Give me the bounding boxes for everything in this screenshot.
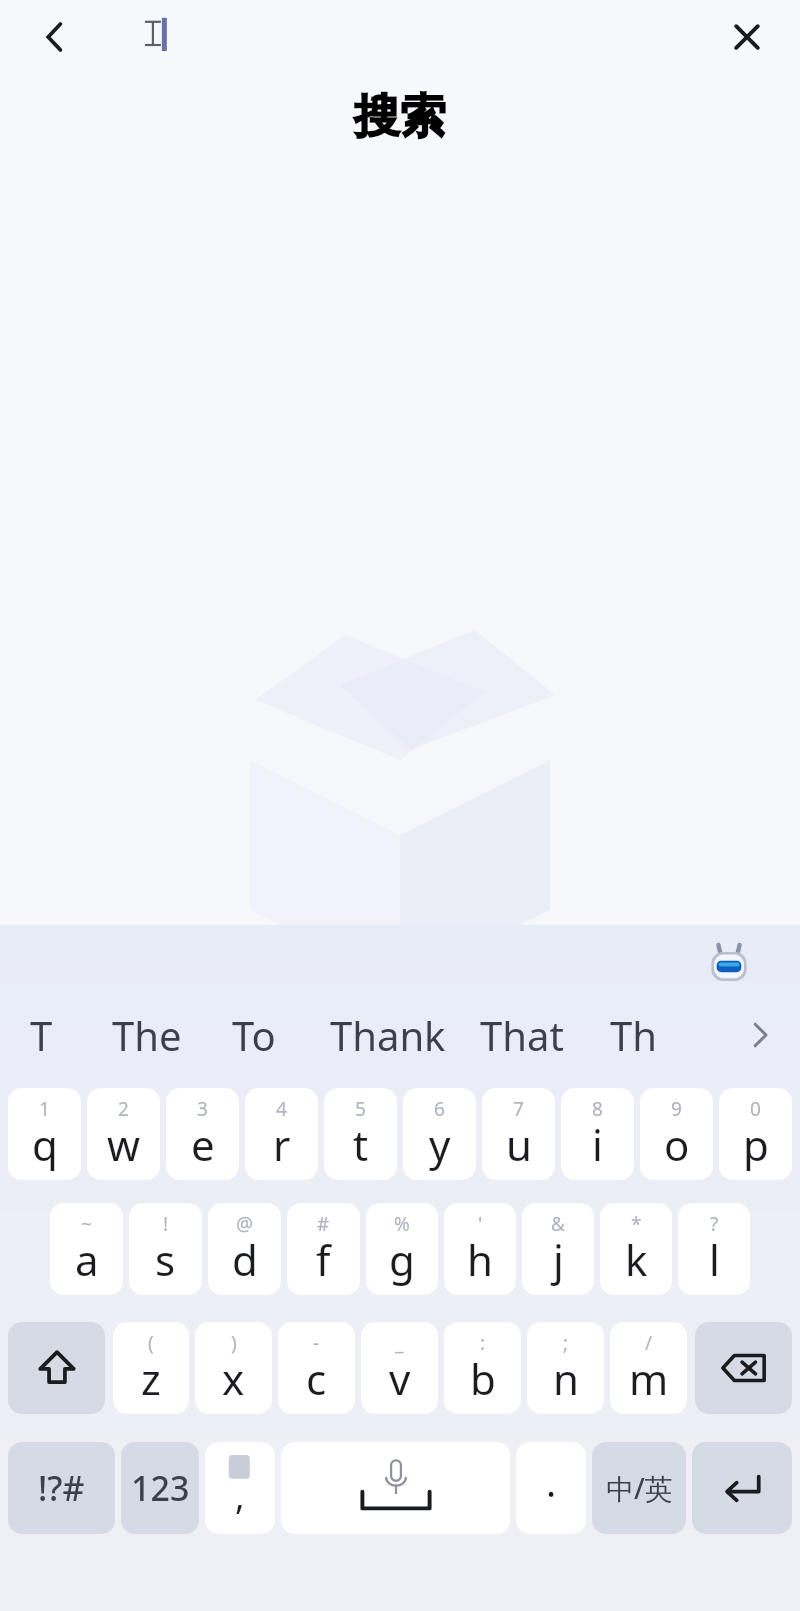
staticText: s [155, 1231, 176, 1288]
button[interactable] [120, 0, 320, 66]
staticText: n [553, 1350, 579, 1407]
button[interactable]: 4 [245, 1088, 318, 1180]
staticText: & [551, 1211, 565, 1237]
button[interactable]: 5 [324, 1088, 397, 1180]
button[interactable]: ; [527, 1322, 604, 1414]
button[interactable]: Thank [330, 990, 446, 1080]
button[interactable]: # [287, 1203, 360, 1295]
staticText: 中/英 [606, 1469, 673, 1507]
button[interactable]: 123 [121, 1442, 199, 1534]
button[interactable]: 9 [640, 1088, 713, 1180]
button[interactable]: 0 [719, 1088, 792, 1180]
staticText: m [629, 1350, 669, 1407]
button[interactable]: Close [712, 2, 782, 72]
staticText: q [32, 1116, 58, 1173]
button[interactable]: 2 [87, 1088, 160, 1180]
staticText: 3 [197, 1096, 208, 1122]
staticText: ; [563, 1330, 569, 1356]
button[interactable]: The [112, 990, 182, 1080]
staticText: To [232, 1008, 276, 1062]
button[interactable]: 7 [482, 1088, 555, 1180]
staticText: r [273, 1116, 291, 1173]
staticText: Th [610, 1008, 657, 1062]
staticText: 2 [118, 1096, 129, 1122]
staticText: e [191, 1116, 215, 1173]
staticText: z [141, 1350, 161, 1407]
button[interactable]: 6 [403, 1088, 476, 1180]
staticText: o [664, 1116, 690, 1173]
staticText: % [394, 1211, 410, 1237]
button[interactable]: ( [113, 1322, 189, 1414]
staticText: v [389, 1350, 411, 1407]
staticText: 123 [131, 1465, 190, 1511]
button[interactable]: !?# [8, 1442, 115, 1534]
button[interactable]: 中/英 [592, 1442, 686, 1534]
button[interactable]: - [278, 1322, 355, 1414]
button[interactable]: To [232, 990, 276, 1080]
button[interactable]: 3 [166, 1088, 239, 1180]
staticText: g [389, 1231, 415, 1288]
staticText: ) [231, 1330, 237, 1356]
staticText: d [232, 1231, 258, 1288]
button[interactable]: Backspace [695, 1322, 792, 1414]
button[interactable]: @ [208, 1203, 281, 1295]
staticText: . [546, 1456, 557, 1508]
staticText: i [592, 1116, 603, 1173]
button[interactable]: % [366, 1203, 438, 1295]
staticText: ! [163, 1211, 169, 1237]
staticText: !?# [38, 1465, 85, 1511]
staticText: 4 [276, 1096, 287, 1122]
button[interactable]: ! [129, 1203, 202, 1295]
button[interactable]: That [480, 990, 564, 1080]
button[interactable]: ~ [50, 1203, 123, 1295]
staticText: 5 [355, 1096, 366, 1122]
button[interactable]: Comma [205, 1442, 275, 1534]
staticText: k [625, 1231, 648, 1288]
button[interactable]: & [522, 1203, 594, 1295]
button[interactable]: Space [281, 1442, 510, 1534]
button[interactable]: / [610, 1322, 687, 1414]
staticText: _ [395, 1330, 404, 1356]
button[interactable]: Enter [692, 1442, 792, 1534]
button[interactable]: * [600, 1203, 672, 1295]
staticText: 1 [39, 1096, 50, 1122]
button[interactable]: ) [195, 1322, 272, 1414]
staticText: # [317, 1211, 330, 1237]
staticText: The [112, 1008, 182, 1062]
staticText: 搜索 [354, 88, 446, 146]
button[interactable]: Th [610, 990, 657, 1080]
button[interactable]: : [444, 1322, 521, 1414]
staticText: h [467, 1231, 493, 1288]
staticText: / [645, 1330, 653, 1356]
staticText: p [743, 1116, 769, 1173]
staticText: T [30, 1008, 53, 1062]
staticText: ( [148, 1330, 154, 1356]
staticText: 9 [671, 1096, 682, 1122]
button[interactable]: _ [361, 1322, 438, 1414]
button[interactable]: 8 [561, 1088, 634, 1180]
staticText: x [222, 1350, 245, 1407]
button[interactable]: ? [678, 1203, 750, 1295]
staticText: : [480, 1330, 486, 1356]
button[interactable]: ' [444, 1203, 516, 1295]
staticText: b [470, 1350, 496, 1407]
staticText: l [709, 1231, 720, 1288]
staticText: That [480, 1008, 564, 1062]
button[interactable]: T [30, 990, 53, 1080]
button[interactable]: 1 [8, 1088, 81, 1180]
staticText: Thank [330, 1008, 446, 1062]
staticText: @ [236, 1211, 254, 1237]
button[interactable]: Back [20, 2, 90, 72]
staticText: ~ [81, 1211, 92, 1237]
button[interactable]: Input method assistant [702, 939, 756, 993]
staticText: - [313, 1330, 320, 1356]
staticText: 8 [592, 1096, 603, 1122]
staticText: ? [710, 1211, 719, 1237]
staticText: c [306, 1350, 327, 1407]
staticText: w [107, 1116, 141, 1173]
staticText: ' [478, 1211, 483, 1237]
button[interactable]: Shift [8, 1322, 105, 1414]
button[interactable]: More candidates [720, 990, 800, 1080]
staticText: u [506, 1116, 532, 1173]
button[interactable]: Period [516, 1442, 586, 1534]
